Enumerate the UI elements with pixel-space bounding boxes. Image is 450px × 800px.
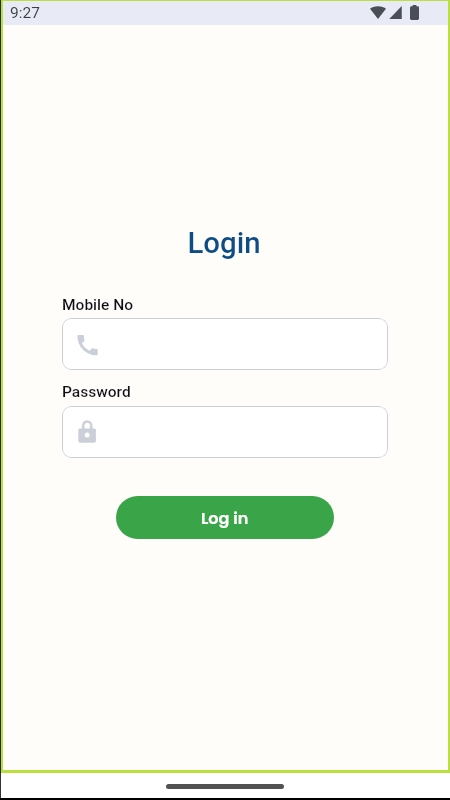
staticText: Mobile No <box>62 296 134 314</box>
button[interactable]: Mobile number field <box>62 318 388 370</box>
staticText: Login <box>0 226 449 260</box>
staticText: Log in <box>201 507 249 529</box>
button[interactable]: Password field <box>62 406 388 458</box>
button[interactable]: Log in <box>116 496 334 539</box>
staticText: 9:27 <box>10 4 40 22</box>
staticText: Password <box>62 383 131 401</box>
